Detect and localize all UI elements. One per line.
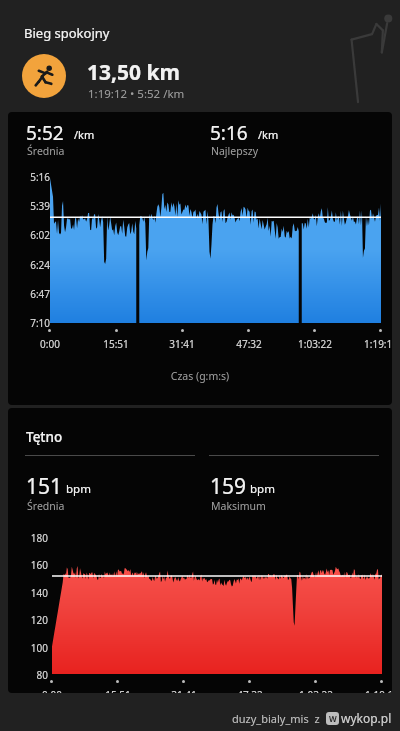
staticText: 31:41 <box>157 337 207 351</box>
button[interactable]: 5:52 <box>8 112 392 405</box>
staticText: /km <box>258 127 279 142</box>
other: Running activity <box>22 54 66 98</box>
staticText: Najlepszy <box>211 144 258 158</box>
staticText: 100 <box>20 641 48 655</box>
staticText: Maksimum <box>211 499 266 513</box>
staticText: 47:32 <box>224 337 274 351</box>
staticText: 1:03:22 <box>291 688 341 693</box>
staticText: 160 <box>20 558 48 572</box>
staticText: Czas (g:m:s) <box>8 369 392 383</box>
staticText: 6:47 <box>23 287 50 301</box>
staticText: 1:19:13 <box>357 688 392 693</box>
staticText: bpm <box>250 481 275 497</box>
staticText: 6:02 <box>23 228 50 242</box>
staticText: 159 <box>210 472 247 501</box>
staticText: 1:03:22 <box>290 337 340 351</box>
staticText: 0:00 <box>27 688 77 693</box>
staticText: 0:00 <box>25 337 75 351</box>
staticText: 15:51 <box>91 337 141 351</box>
staticText: 120 <box>20 613 48 627</box>
staticText: 6:24 <box>23 258 50 272</box>
staticText: Średnia <box>27 499 65 513</box>
staticText: 1:19:13 <box>356 337 392 351</box>
staticText: Tętno <box>26 428 63 446</box>
staticText: 151 <box>26 472 63 501</box>
staticText: Bieg spokojny <box>24 24 110 42</box>
staticText: W <box>329 713 337 724</box>
staticText: 5:16 <box>210 120 248 146</box>
staticText: 47:32 <box>225 688 275 693</box>
staticText: 13,50 km <box>87 58 180 87</box>
staticText: Średnia <box>27 144 65 158</box>
staticText: 5:16 <box>23 170 50 184</box>
staticText: duzy_bialy_mis z <box>232 711 326 726</box>
staticText: 31:41 <box>159 688 209 693</box>
staticText: 5:39 <box>23 199 50 213</box>
staticText: wykop.pl <box>341 710 392 726</box>
staticText: 15:51 <box>93 688 143 693</box>
staticText: 180 <box>20 531 48 545</box>
staticText: 5:52 <box>26 120 64 146</box>
staticText: 80 <box>20 668 48 682</box>
button[interactable]: Bieg spokojny <box>0 0 400 112</box>
staticText: 7:10 <box>23 316 50 330</box>
staticText: 140 <box>20 586 48 600</box>
staticText: /km <box>74 127 95 142</box>
staticText: bpm <box>66 481 91 497</box>
staticText: 1:19:12 • 5:52 /km <box>88 86 185 102</box>
button[interactable]: Tętno <box>8 408 392 693</box>
